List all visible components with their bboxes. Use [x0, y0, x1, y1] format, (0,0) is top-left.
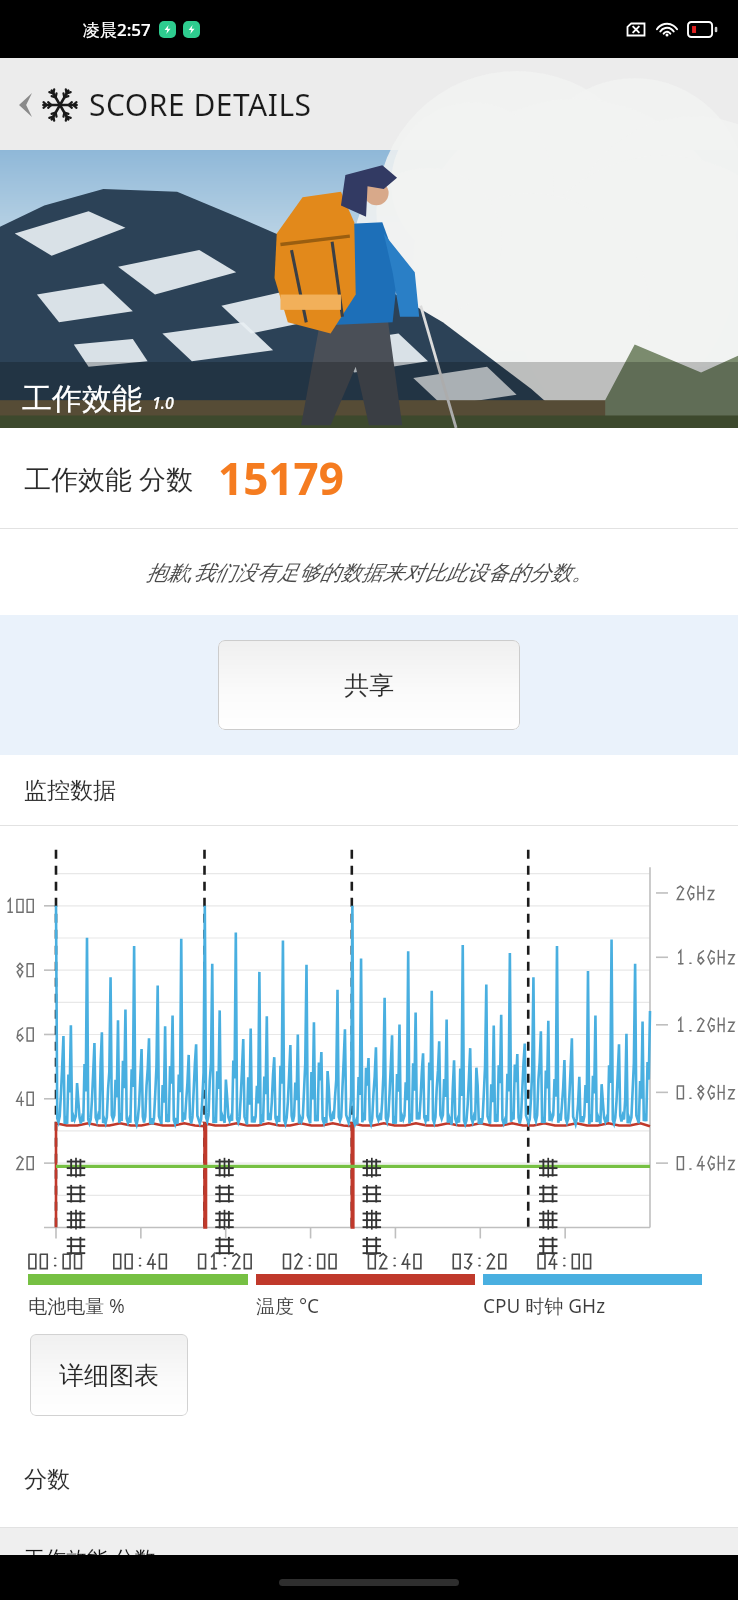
staticText: 温度 °C [256, 1293, 320, 1319]
staticText: 15179 [218, 448, 344, 508]
staticText: SCORE DETAILS [89, 84, 312, 125]
staticText: 详细图表 [59, 1360, 159, 1391]
button[interactable]: 详细图表 [30, 1334, 188, 1416]
staticText: 1.0 [152, 392, 174, 414]
button[interactable]: 共享 [218, 640, 520, 730]
staticText: 工作效能 分数 [24, 460, 194, 497]
staticText: 共享 [344, 670, 394, 701]
staticText: 监控数据 [24, 776, 116, 805]
button[interactable]: Back [8, 88, 42, 122]
staticText: 抱歉,我们没有足够的数据来对比此设备的分数。 [146, 558, 593, 587]
staticText: 工作效能 [22, 380, 142, 418]
staticText: 电池电量 % [28, 1293, 125, 1319]
staticText: 凌晨2:57 [83, 18, 151, 41]
staticText: CPU 时钟 GHz [483, 1293, 606, 1319]
staticText: 分数 [24, 1465, 70, 1494]
staticText: 工作效能 分数 [24, 1544, 156, 1573]
